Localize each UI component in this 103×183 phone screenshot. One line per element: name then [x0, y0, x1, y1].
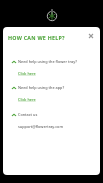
staticText: Contact us — [18, 112, 38, 117]
button[interactable]: Contact us — [3, 112, 100, 129]
button[interactable]: Close — [84, 29, 97, 42]
staticText: Need help using the flower tray? — [18, 59, 77, 64]
staticText: Need help using the app? — [18, 85, 65, 90]
button[interactable]: Need help using the flower tray? — [3, 59, 100, 76]
button[interactable]: Click here — [18, 97, 36, 102]
staticText: HOW CAN WE HELP? — [8, 34, 65, 41]
button[interactable]: Click here — [18, 71, 36, 76]
button[interactable]: Need help using the app? — [3, 85, 100, 102]
button[interactable]: support@flowertray.com — [18, 124, 64, 129]
